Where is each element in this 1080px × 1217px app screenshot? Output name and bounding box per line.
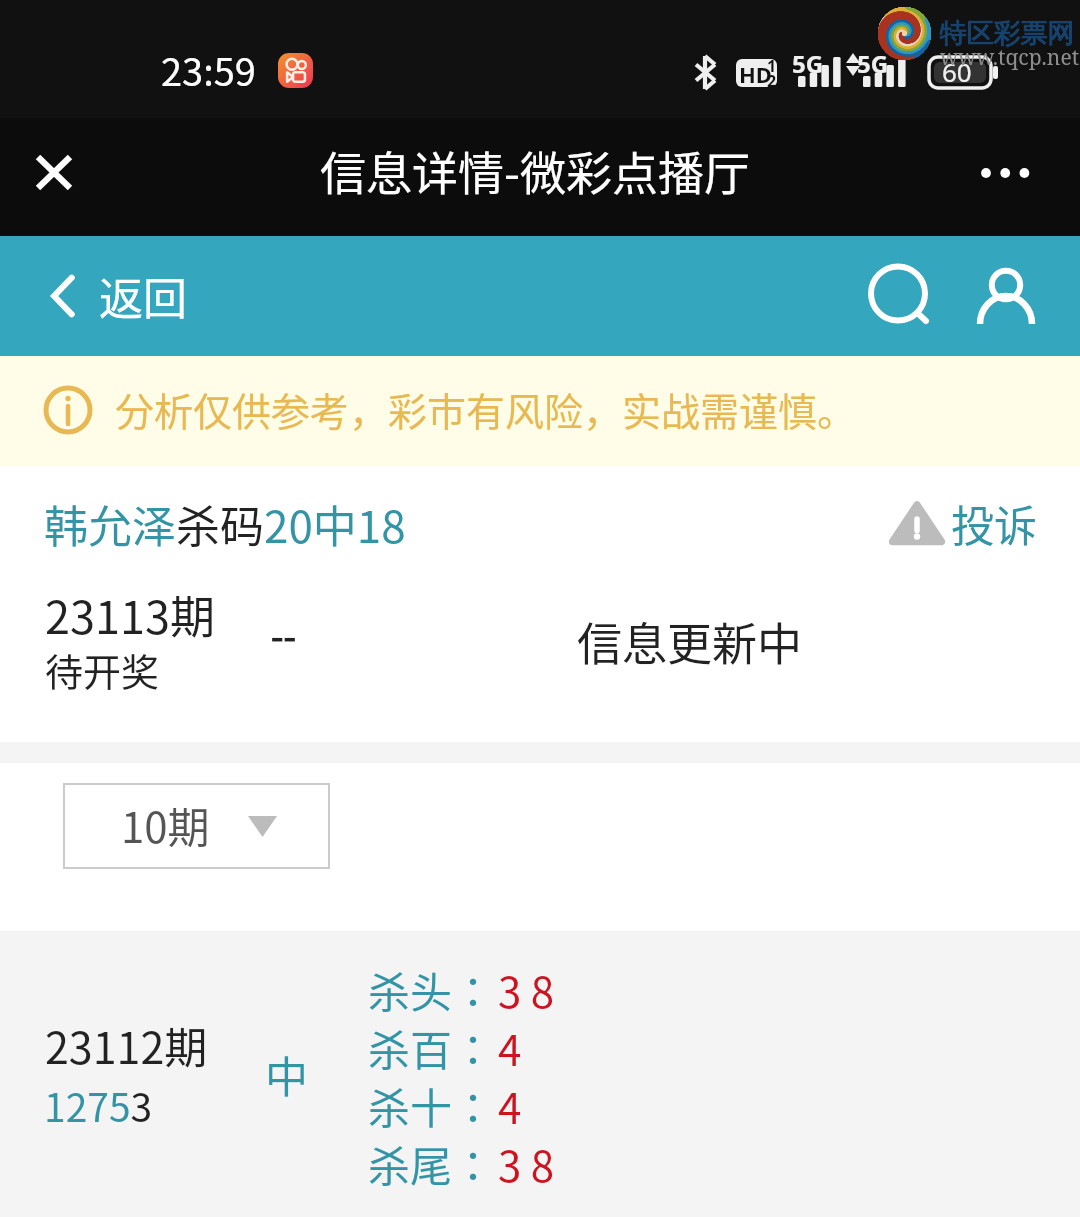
button[interactable]: Close — [13, 132, 95, 214]
staticText: www.tqcp.net — [940, 43, 1080, 72]
staticText: 1 — [767, 55, 777, 77]
staticText: 杀尾： — [368, 1133, 495, 1194]
button[interactable]: Account — [969, 268, 1053, 352]
staticText: 60 — [942, 54, 972, 89]
staticText: 杀十： — [368, 1075, 495, 1136]
staticText: 23113期 — [45, 582, 215, 647]
staticText: 12753 — [44, 1077, 153, 1133]
staticText: 23112期 — [45, 1014, 208, 1076]
staticText: 10期 — [121, 794, 210, 855]
staticText: 2 — [767, 70, 777, 92]
staticText: 韩允泽杀码20中18 — [44, 492, 406, 556]
staticText: 特区彩票网 — [939, 17, 1074, 51]
staticText: 分析仅供参考，彩市有风险，实战需谨慎。 — [115, 381, 857, 437]
staticText: 返回 — [99, 264, 187, 328]
staticText: 杀百： — [368, 1017, 495, 1078]
staticText: -- — [271, 608, 296, 660]
staticText: 待开奖 — [45, 642, 160, 697]
staticText: 信息详情-微彩点播厅 — [320, 137, 750, 204]
button[interactable]: 23112期 — [0, 931, 1080, 1217]
staticText: 4 — [498, 1075, 522, 1136]
staticText: 信息更新中 — [577, 609, 803, 674]
staticText: HD — [739, 59, 772, 89]
staticText: 23:59 — [161, 42, 256, 97]
staticText: 3 8 — [498, 959, 555, 1020]
button[interactable]: 10期 — [63, 783, 330, 869]
button[interactable]: More options — [955, 132, 1051, 214]
button[interactable]: 返回 — [34, 252, 205, 340]
button[interactable]: 韩允泽杀码20中18 — [30, 478, 420, 570]
staticText: 3 8 — [498, 1133, 555, 1194]
staticText: 5G — [792, 47, 824, 80]
staticText: 投诉 — [951, 492, 1037, 554]
staticText: 中 — [265, 1043, 308, 1105]
button[interactable]: Search — [858, 259, 942, 343]
staticText: 5G — [857, 47, 889, 80]
staticText: 4 — [498, 1017, 522, 1078]
button[interactable]: 投诉 — [874, 478, 1051, 568]
staticText: 杀头： — [368, 959, 495, 1020]
